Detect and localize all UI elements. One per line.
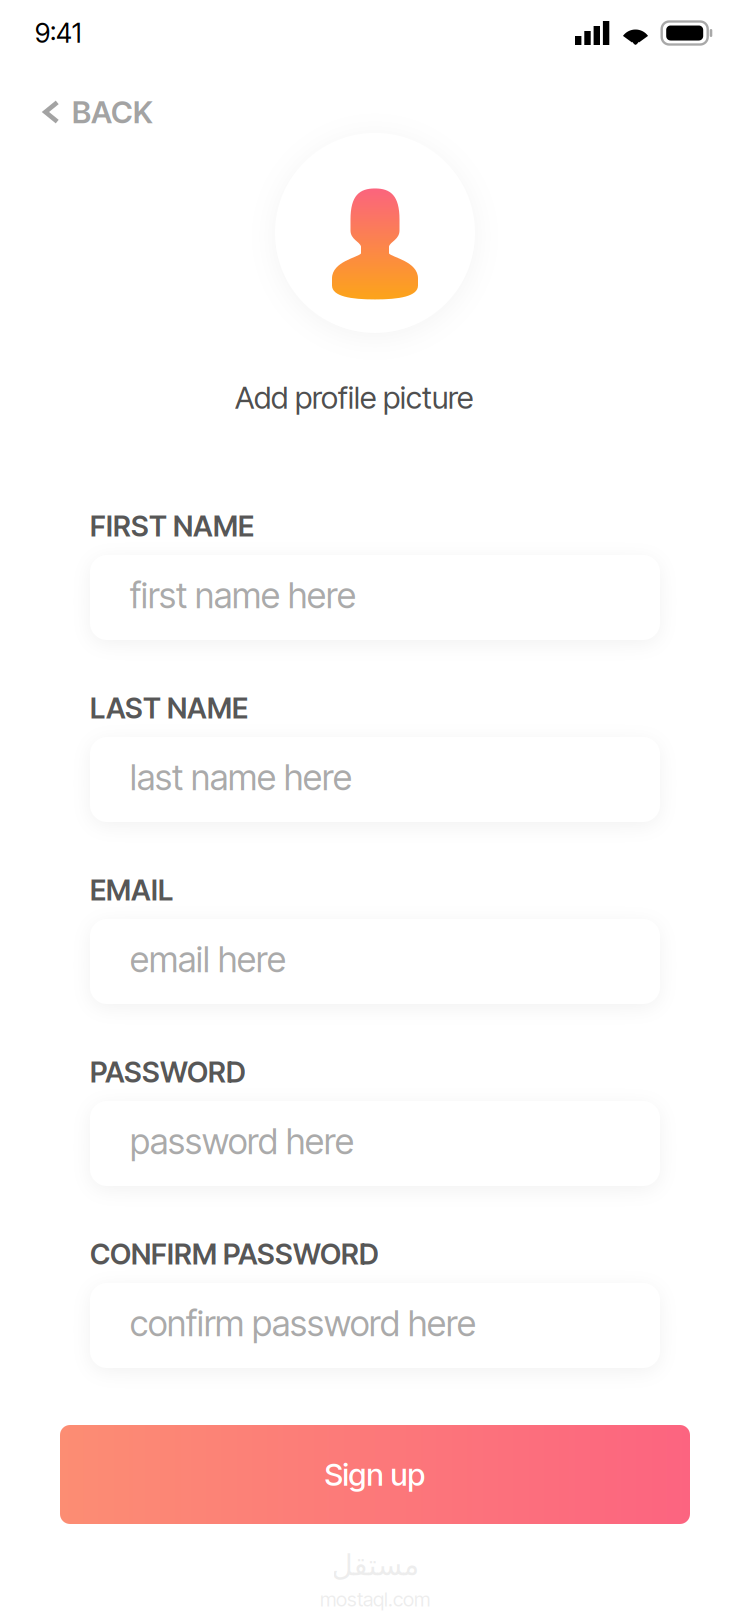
staticText: confirm password here (130, 1302, 476, 1345)
staticText: CONFIRM PASSWORD (90, 1237, 379, 1271)
staticText: BACK (72, 93, 153, 130)
staticText: Sign up (324, 1456, 425, 1493)
button[interactable]: BACK (0, 66, 223, 144)
button[interactable]: first name here (90, 555, 660, 640)
staticText: LAST NAME (90, 691, 248, 725)
staticText: EMAIL (90, 873, 173, 907)
staticText: FIRST NAME (90, 509, 254, 543)
staticText: first name here (130, 574, 356, 617)
button[interactable]: last name here (90, 737, 660, 822)
staticText: password here (130, 1120, 354, 1163)
staticText: last name here (130, 756, 352, 799)
staticText: mostaql.com (320, 1587, 430, 1611)
staticText: email here (130, 938, 286, 981)
staticText: Add profile picture (235, 379, 473, 416)
staticText: مستقل (331, 1548, 419, 1582)
button[interactable]: Add profile picture (275, 133, 475, 333)
staticText: 9:41 (35, 17, 81, 49)
staticText: PASSWORD (90, 1055, 246, 1089)
button[interactable]: email here (90, 919, 660, 1004)
button[interactable]: password here (90, 1101, 660, 1186)
button[interactable]: confirm password here (90, 1283, 660, 1368)
button[interactable]: Sign up (60, 1425, 690, 1524)
